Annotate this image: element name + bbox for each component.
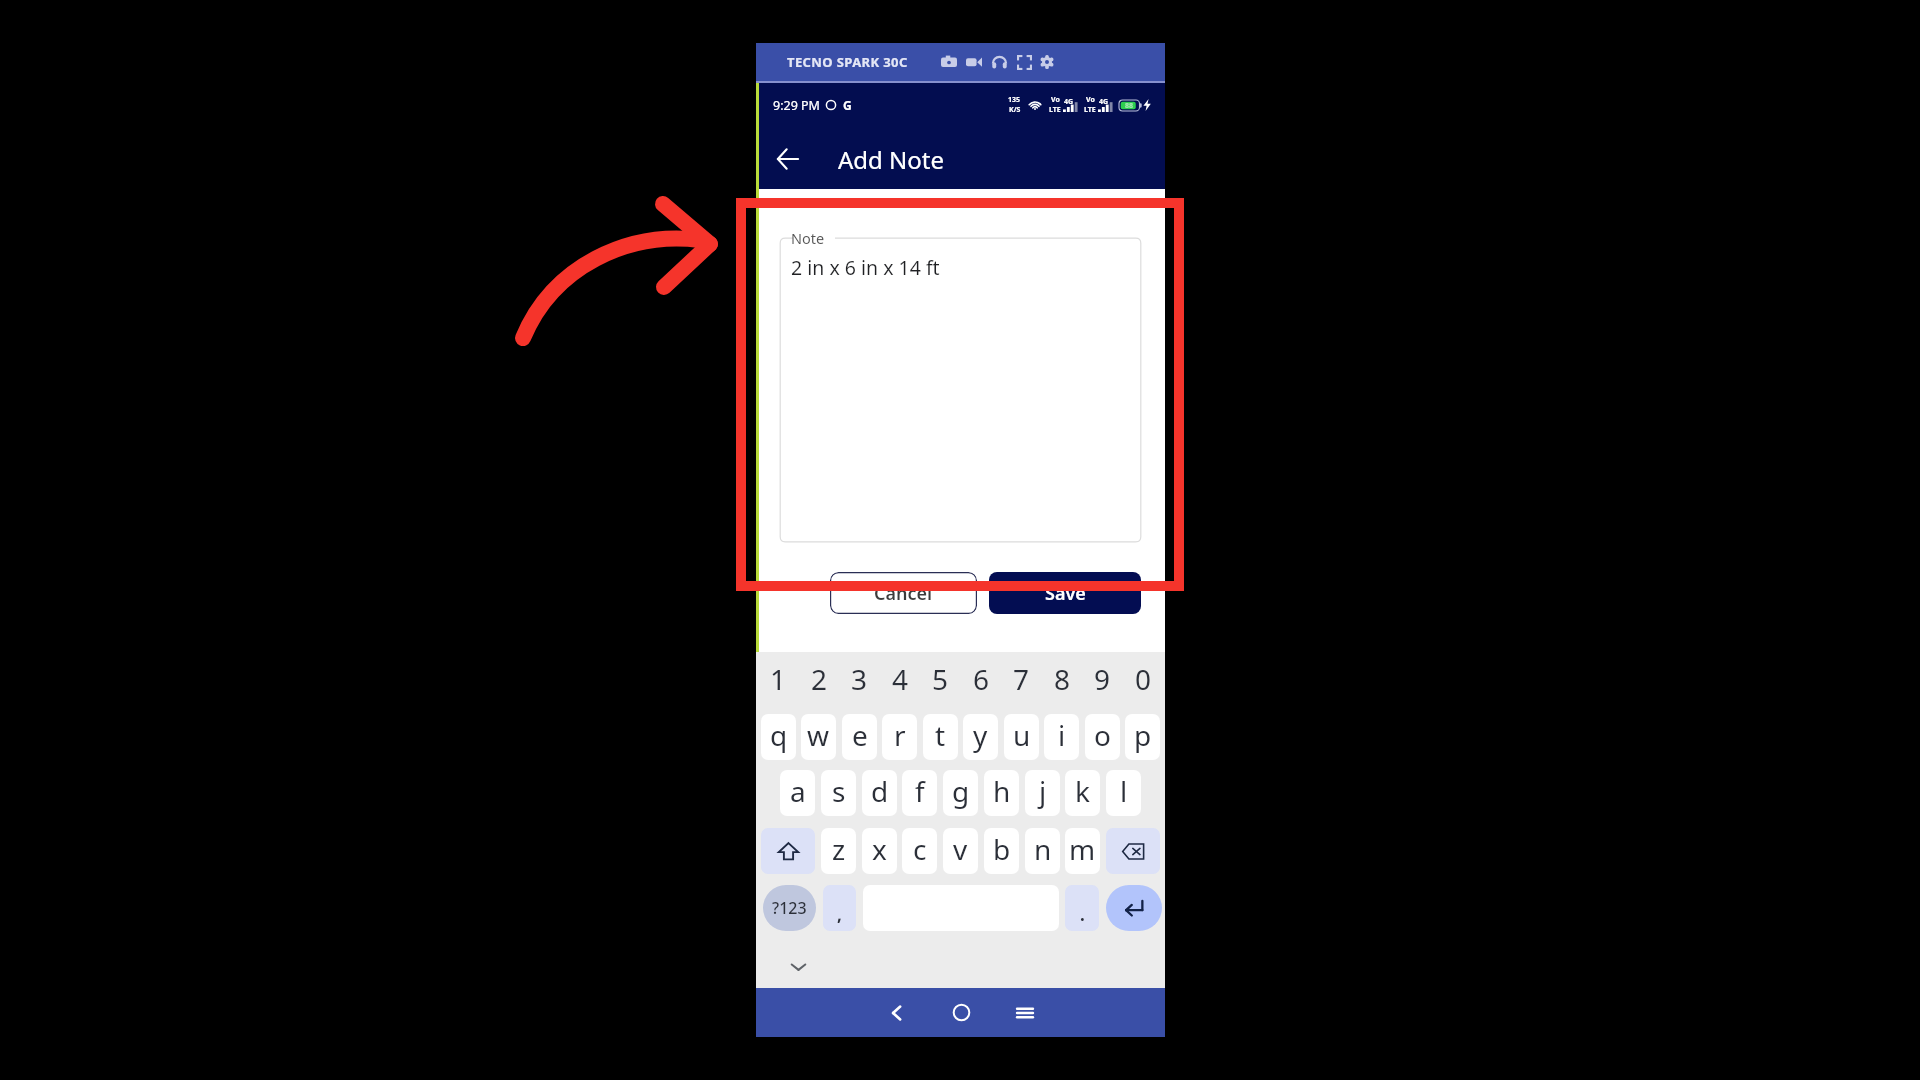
button[interactable]: m (1065, 828, 1100, 874)
staticText: LTE (1084, 105, 1096, 115)
button[interactable]: i (1044, 714, 1079, 760)
staticText: k (1075, 772, 1090, 810)
button[interactable]: Settings (1036, 51, 1058, 73)
button[interactable]: e (842, 714, 877, 760)
button[interactable]: o (1085, 714, 1120, 760)
staticText: 2 (811, 660, 828, 698)
staticText: Save (1045, 581, 1086, 606)
button[interactable]: d (862, 770, 897, 816)
button[interactable]: Save (989, 572, 1141, 614)
staticText: Vo (1051, 95, 1060, 105)
button[interactable]: b (984, 828, 1019, 874)
button[interactable]: f (902, 770, 937, 816)
button[interactable]: z (821, 828, 856, 874)
button[interactable]: t (923, 714, 958, 760)
button[interactable]: l (1106, 770, 1141, 816)
staticText: 4G (1099, 97, 1109, 107)
button[interactable]: u (1004, 714, 1039, 760)
button[interactable]: Shift (761, 828, 815, 874)
button[interactable]: 1 (760, 654, 796, 704)
staticText: r (894, 716, 906, 754)
staticText: ?123 (772, 897, 807, 919)
button[interactable]: s (821, 770, 856, 816)
staticText: 4 (892, 660, 909, 698)
staticText: LTE (1049, 105, 1061, 115)
button[interactable]: Hide keyboard (784, 952, 812, 980)
staticText: Vo (1086, 95, 1095, 105)
button[interactable]: Note (779, 237, 1142, 543)
staticText: f (915, 772, 925, 810)
staticText: 3 (851, 660, 868, 698)
button[interactable]: v (943, 828, 978, 874)
button[interactable]: 0 (1125, 654, 1161, 704)
staticText: x (872, 830, 887, 868)
button[interactable]: a (780, 770, 815, 816)
button[interactable]: Screenshot (938, 51, 960, 73)
button[interactable]: k (1065, 770, 1100, 816)
staticText: 2 in x 6 in x 14 ft (791, 254, 940, 281)
button[interactable]: 6 (963, 654, 999, 704)
button[interactable]: h (984, 770, 1019, 816)
staticText: n (1034, 830, 1052, 868)
staticText: t (935, 716, 946, 754)
button[interactable]: r (882, 714, 917, 760)
button[interactable]: Back (767, 138, 809, 180)
staticText: 7 (1013, 660, 1030, 698)
button[interactable]: 4 (882, 654, 918, 704)
staticText: p (1134, 716, 1152, 754)
button[interactable]: . (1065, 885, 1099, 931)
staticText: j (1039, 772, 1047, 810)
staticText: , (837, 903, 842, 926)
staticText: G (843, 97, 852, 113)
button[interactable]: w (801, 714, 836, 760)
staticText: i (1058, 716, 1066, 754)
button[interactable]: Back (870, 988, 924, 1037)
staticText: 4G (1064, 97, 1074, 107)
staticText: h (993, 772, 1011, 810)
button[interactable]: Record video (963, 51, 985, 73)
button[interactable]: 8 (1044, 654, 1080, 704)
staticText: 6 (973, 660, 990, 698)
staticText: e (852, 716, 868, 754)
staticText: a (790, 772, 806, 810)
staticText: Add Note (838, 143, 945, 176)
staticText: q (770, 716, 788, 754)
button[interactable]: n (1025, 828, 1060, 874)
staticText: l (1120, 772, 1128, 810)
button[interactable]: Home (934, 988, 988, 1037)
button[interactable]: , (823, 885, 856, 931)
staticText: z (832, 830, 846, 868)
button[interactable]: Cancel (830, 572, 977, 614)
staticText: s (832, 772, 846, 810)
button[interactable]: 7 (1003, 654, 1039, 704)
button[interactable]: Audio (988, 51, 1010, 73)
staticText: y (973, 716, 988, 754)
staticText: . (1080, 903, 1085, 926)
button[interactable]: Enter (1106, 885, 1162, 931)
staticText: w (807, 716, 830, 754)
button[interactable]: g (943, 770, 978, 816)
button[interactable]: Recents (998, 988, 1052, 1037)
button[interactable]: 5 (922, 654, 958, 704)
staticText: TECNO SPARK 30C (787, 53, 908, 71)
button[interactable]: Fullscreen (1013, 51, 1035, 73)
staticText: 88 (1125, 101, 1134, 111)
button[interactable]: 2 (801, 654, 837, 704)
button[interactable]: q (761, 714, 796, 760)
button[interactable]: ?123 (763, 885, 816, 931)
button[interactable]: 3 (841, 654, 877, 704)
button[interactable]: 9 (1084, 654, 1120, 704)
button[interactable]: x (862, 828, 897, 874)
button[interactable]: y (963, 714, 998, 760)
button[interactable]: j (1025, 770, 1060, 816)
button[interactable]: Backspace (1106, 828, 1160, 874)
staticText: u (1013, 716, 1031, 754)
staticText: b (993, 830, 1011, 868)
staticText: 1 (770, 660, 787, 698)
staticText: 0 (1135, 660, 1152, 698)
staticText: 9 (1094, 660, 1111, 698)
button[interactable]: c (902, 828, 937, 874)
button[interactable]: p (1125, 714, 1160, 760)
staticText: Cancel (874, 581, 933, 606)
